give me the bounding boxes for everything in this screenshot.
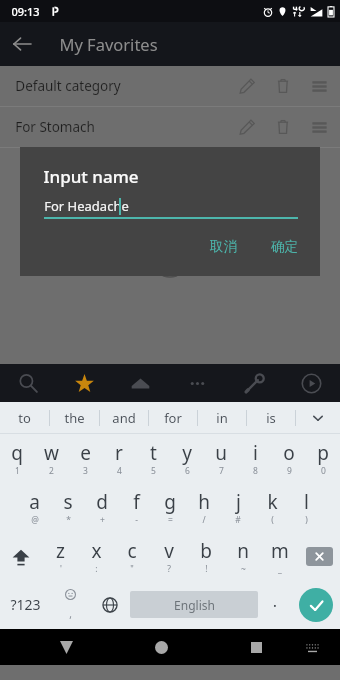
staticText: .	[273, 592, 277, 611]
button[interactable]: the	[50, 402, 99, 433]
button[interactable]: Edit	[232, 71, 262, 101]
staticText: ?	[167, 563, 171, 575]
button[interactable]: x	[78, 532, 114, 581]
staticText: My Favorites	[59, 33, 158, 55]
button[interactable]: and	[100, 402, 148, 433]
button[interactable]: k	[255, 483, 289, 532]
button[interactable]: Tools	[226, 364, 283, 402]
staticText: the	[64, 409, 85, 427]
staticText: is	[266, 409, 276, 427]
button[interactable]: w	[34, 434, 68, 483]
staticText: for	[164, 409, 182, 427]
staticText: =	[168, 514, 173, 526]
staticText: v	[164, 538, 174, 564]
button[interactable]: e	[68, 434, 102, 483]
button[interactable]: o	[272, 434, 306, 483]
staticText: l	[304, 489, 309, 515]
button[interactable]: Home	[112, 364, 169, 402]
staticText: p	[317, 440, 329, 466]
button[interactable]: m	[261, 532, 298, 581]
staticText: Input name	[43, 165, 139, 188]
button[interactable]: Switch keyboard	[292, 629, 332, 665]
staticText: 9	[287, 465, 292, 477]
staticText: t	[150, 440, 157, 466]
button[interactable]: English	[130, 591, 258, 618]
staticText: y	[182, 440, 192, 466]
staticText: 2	[49, 465, 54, 477]
button[interactable]: 确定	[265, 235, 304, 258]
button[interactable]: v	[150, 532, 187, 581]
button[interactable]: Search	[0, 364, 56, 402]
staticText: !	[205, 563, 208, 575]
staticText: 确定	[271, 238, 298, 255]
button[interactable]: z	[42, 532, 78, 581]
staticText: 3	[83, 465, 88, 477]
button[interactable]: s	[51, 483, 85, 532]
staticText: 09:13	[11, 4, 40, 19]
staticText: q	[11, 440, 23, 466]
button[interactable]: f	[119, 483, 153, 532]
button[interactable]: is	[247, 402, 295, 433]
staticText: s	[63, 489, 73, 515]
button[interactable]: Reorder	[304, 112, 334, 142]
button[interactable]: c	[114, 532, 150, 581]
staticText: m	[271, 538, 289, 564]
staticText: 5	[151, 465, 156, 477]
staticText: 6	[185, 465, 190, 477]
button[interactable]: d	[85, 483, 119, 532]
button[interactable]: l	[289, 483, 323, 532]
button[interactable]: Play	[283, 364, 340, 402]
staticText: :	[95, 563, 98, 575]
button[interactable]: Hide keyboard	[46, 629, 86, 665]
button[interactable]: Delete	[268, 71, 298, 101]
button[interactable]: Done	[292, 581, 340, 628]
button[interactable]: Favorites	[56, 364, 112, 402]
button[interactable]: in	[198, 402, 246, 433]
button[interactable]: Emoji	[50, 581, 90, 628]
button[interactable]: Expand suggestions	[296, 402, 340, 433]
button[interactable]: u	[204, 434, 238, 483]
button[interactable]: Delete	[268, 112, 298, 142]
button[interactable]: Home	[141, 629, 181, 665]
button[interactable]: y	[170, 434, 204, 483]
button[interactable]: Reorder	[304, 71, 334, 101]
button[interactable]: 取消	[204, 235, 243, 258]
staticText: For Stomach	[15, 118, 95, 136]
button[interactable]: Back	[8, 30, 36, 58]
button[interactable]: g	[153, 483, 187, 532]
button[interactable]: .	[258, 581, 292, 628]
button[interactable]: Edit	[232, 112, 262, 142]
staticText: a	[29, 489, 40, 515]
button[interactable]: Default category	[0, 66, 340, 106]
button[interactable]: Change language	[90, 581, 130, 628]
button[interactable]: ?123	[0, 581, 50, 628]
button[interactable]: Add category	[153, 244, 187, 278]
button[interactable]: Recents	[236, 629, 276, 665]
staticText: c	[127, 538, 137, 564]
button[interactable]: Backspace	[298, 532, 340, 581]
button[interactable]: q	[0, 434, 34, 483]
staticText: _	[278, 563, 282, 575]
button[interactable]: a	[17, 483, 51, 532]
staticText: "	[130, 563, 134, 575]
staticText: and	[112, 409, 136, 427]
button[interactable]: For Stomach	[0, 107, 340, 147]
staticText: d	[96, 489, 108, 515]
button[interactable]: to	[0, 402, 49, 433]
button[interactable]: r	[102, 434, 136, 483]
staticText: 8	[253, 465, 258, 477]
staticText: in	[216, 409, 228, 427]
button[interactable]: i	[238, 434, 272, 483]
staticText: )	[305, 514, 308, 526]
button[interactable]: p	[306, 434, 340, 483]
staticText: g	[164, 489, 176, 515]
button[interactable]: j	[221, 483, 255, 532]
button[interactable]: b	[187, 532, 224, 581]
button[interactable]: More	[169, 364, 226, 402]
button[interactable]: n	[224, 532, 261, 581]
staticText: x	[91, 538, 102, 564]
button[interactable]: h	[187, 483, 221, 532]
button[interactable]: t	[136, 434, 170, 483]
button[interactable]: Shift	[0, 532, 42, 581]
button[interactable]: for	[149, 402, 197, 433]
